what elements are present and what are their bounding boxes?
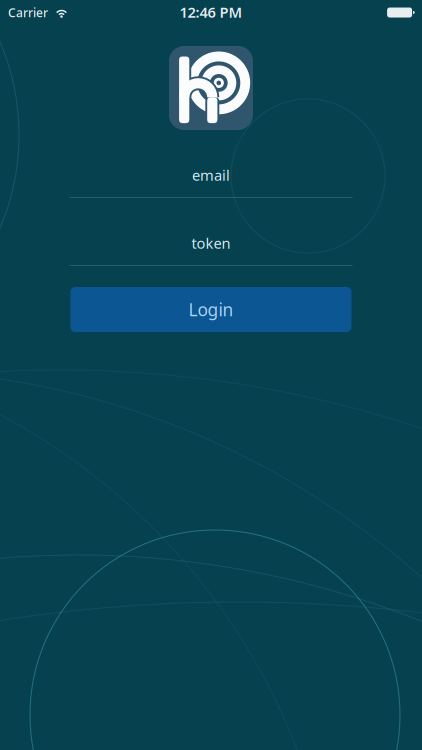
staticText: Carrier [8, 4, 48, 20]
staticText: email [192, 165, 230, 185]
staticText: 12:46 PM [179, 2, 242, 22]
staticText: Login [188, 298, 233, 321]
staticText: token [191, 233, 230, 253]
button[interactable]: Login [70, 287, 351, 332]
